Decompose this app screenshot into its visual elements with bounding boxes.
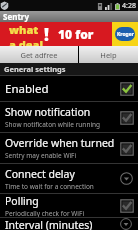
staticText: Enabled xyxy=(5,81,49,97)
staticText: Connect delay (seconds) xyxy=(5,167,116,181)
button[interactable]: Connect delay (seconds) xyxy=(0,164,138,193)
staticText: Override when turned of xyxy=(5,136,116,150)
button[interactable]: Override when turned of xyxy=(0,133,138,163)
staticText: Time to wait for a connection xyxy=(5,182,94,191)
staticText: Kroger xyxy=(117,31,134,38)
button[interactable]: Toggle checkbox xyxy=(119,110,134,125)
staticText: Periodically check for WiFi xyxy=(5,209,85,217)
button[interactable]: Show notification xyxy=(0,102,138,132)
button[interactable]: Open value picker xyxy=(119,171,134,186)
staticText: Show notificaton while running xyxy=(5,120,101,129)
button[interactable]: Interval (minutes) xyxy=(0,218,138,230)
staticText: 4:28 xyxy=(122,1,136,11)
staticText: 10 for $10 xyxy=(58,26,112,42)
staticText: Polling xyxy=(5,194,39,208)
button[interactable]: Toggle checkbox xyxy=(119,141,134,156)
button[interactable]: Open value picker xyxy=(119,218,134,230)
staticText: Help xyxy=(100,50,117,60)
staticText: ! xyxy=(44,23,49,46)
staticText: Interval (minutes) xyxy=(5,218,93,230)
staticText: a deal xyxy=(9,37,43,46)
button[interactable]: Advertisement: 10 for $10 Kroger xyxy=(0,22,138,46)
button[interactable]: Toggle checkbox xyxy=(119,81,134,96)
button[interactable]: Polling xyxy=(0,194,138,217)
staticText: Sentry may enable WiFi xyxy=(5,151,77,160)
button[interactable]: Help xyxy=(79,46,138,63)
staticText: Sentry xyxy=(3,11,29,22)
staticText: General settings xyxy=(4,64,66,74)
button[interactable]: Get adfree xyxy=(0,46,78,63)
button[interactable]: Toggle checkbox xyxy=(119,198,134,213)
staticText: Show notification xyxy=(5,105,91,119)
staticText: what xyxy=(9,22,39,37)
button[interactable]: Enabled xyxy=(0,76,138,101)
staticText: Get adfree xyxy=(20,50,58,60)
